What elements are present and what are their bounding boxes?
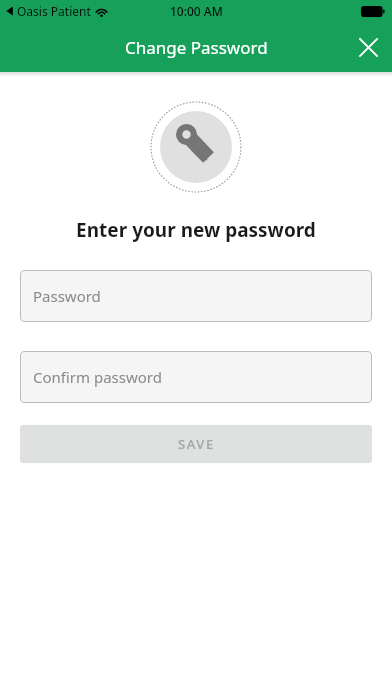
staticText: Change Password (125, 36, 268, 59)
staticText: SAVE (178, 435, 215, 453)
staticText: 10:00 AM (170, 3, 223, 19)
staticText: Password (33, 286, 101, 306)
staticText: Oasis Patient (17, 3, 91, 19)
staticText: Confirm password (33, 367, 162, 387)
button[interactable]: SAVE (20, 425, 372, 463)
staticText: Enter your new password (0, 217, 392, 243)
button[interactable]: Confirm password (20, 351, 372, 403)
button[interactable]: Close (344, 23, 392, 71)
button[interactable]: Password (20, 270, 372, 322)
